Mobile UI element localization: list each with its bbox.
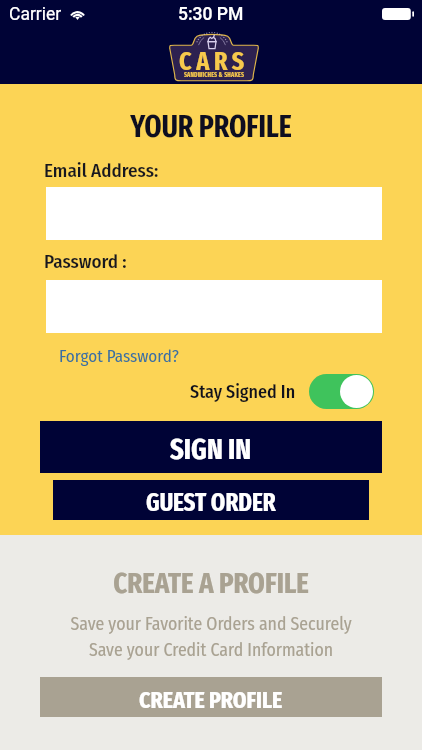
staticText: Save your Favorite Orders and Securely S…: [0, 613, 422, 660]
staticText: SANDWICHES & SHAKES: [169, 71, 259, 79]
button[interactable]: Stay Signed In toggle: [309, 374, 374, 409]
button[interactable]: CREATE PROFILE: [40, 677, 382, 717]
staticText: YOUR PROFILE: [0, 109, 422, 145]
staticText: Password :: [44, 250, 127, 273]
staticText: Forgot Password?: [59, 346, 179, 366]
staticText: CREATE PROFILE: [139, 686, 283, 714]
staticText: GUEST ORDER: [146, 488, 276, 518]
button[interactable]: SIGN IN: [40, 421, 382, 473]
staticText: CREATE A PROFILE: [0, 566, 422, 601]
staticText: 5:30 PM: [178, 4, 244, 25]
staticText: Email Address:: [44, 159, 159, 182]
button[interactable]: Forgot Password?: [59, 346, 179, 366]
button[interactable]: GUEST ORDER: [53, 480, 369, 520]
staticText: SIGN IN: [170, 432, 252, 467]
staticText: Stay Signed In: [190, 381, 296, 403]
staticText: CARS: [169, 46, 259, 77]
staticText: Carrier: [9, 4, 62, 25]
